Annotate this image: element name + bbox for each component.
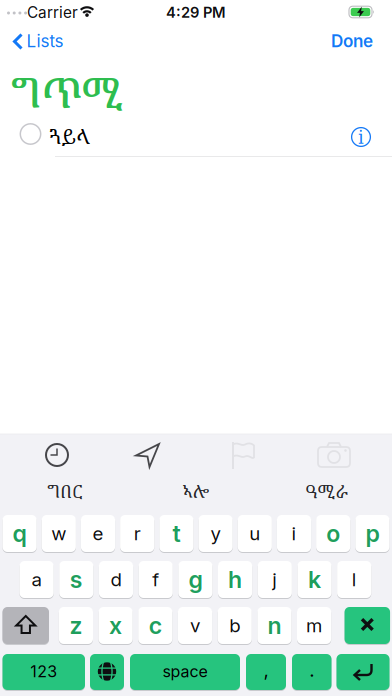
staticText: v — [190, 614, 200, 637]
button[interactable]: o — [316, 514, 350, 553]
staticText: space — [162, 662, 207, 681]
staticText: Lists — [26, 31, 63, 51]
staticText: ዓሚራ — [306, 479, 348, 503]
staticText: ግጥሚ — [11, 64, 123, 120]
button[interactable] — [312, 436, 356, 474]
staticText: g — [188, 565, 202, 594]
button[interactable] — [126, 436, 170, 474]
staticText: o — [326, 519, 340, 548]
staticText: e — [92, 522, 103, 545]
staticText: Done — [331, 31, 373, 51]
staticText: l — [352, 568, 357, 591]
staticText: t — [172, 519, 180, 548]
staticText: a — [32, 568, 42, 591]
button[interactable]: ኣሎ — [134, 476, 258, 506]
button[interactable]: Lists — [0, 23, 76, 59]
button[interactable]: y — [198, 514, 233, 553]
staticText: 4:29 PM — [166, 4, 226, 21]
staticText: p — [365, 519, 379, 548]
button[interactable]: ግበር — [3, 476, 127, 506]
staticText: i — [291, 522, 296, 545]
button[interactable]: ዓሚራ — [265, 476, 389, 506]
staticText: i — [358, 127, 364, 148]
button[interactable]: Done — [320, 23, 384, 59]
button[interactable]: h — [218, 560, 252, 599]
button[interactable]: l — [337, 560, 371, 599]
button[interactable]: k — [297, 560, 332, 599]
staticText: r — [134, 522, 141, 545]
button[interactable]: f — [139, 560, 173, 599]
staticText: q — [13, 519, 27, 548]
staticText: x — [109, 611, 122, 640]
button[interactable] — [2, 606, 49, 645]
staticText: n — [267, 611, 281, 640]
staticText: b — [229, 614, 240, 637]
staticText: f — [152, 568, 159, 591]
staticText: 123 — [30, 662, 57, 681]
staticText: c — [149, 611, 162, 640]
staticText: m — [306, 614, 322, 637]
button[interactable]: . — [292, 653, 331, 691]
button[interactable]: d — [99, 560, 133, 599]
button[interactable]: r — [120, 514, 154, 553]
button[interactable]: p — [355, 514, 389, 553]
button[interactable]: 123 — [2, 653, 85, 691]
staticText: Carrier — [27, 3, 78, 22]
button[interactable]: e — [81, 514, 115, 553]
staticText: w — [51, 522, 66, 545]
button[interactable]: i — [346, 122, 376, 152]
button[interactable] — [0, 113, 392, 155]
staticText: ግበር — [47, 479, 83, 503]
button[interactable]: g — [178, 560, 212, 599]
button[interactable]: s — [59, 560, 93, 599]
button[interactable]: m — [297, 606, 331, 645]
button[interactable] — [35, 436, 79, 474]
button[interactable]: u — [238, 514, 272, 553]
button[interactable] — [90, 653, 124, 691]
button[interactable]: c — [138, 606, 172, 645]
button[interactable]: x — [98, 606, 133, 645]
staticText: d — [110, 568, 121, 591]
staticText: k — [308, 565, 321, 594]
staticText: . — [309, 659, 314, 681]
button[interactable]: space — [130, 653, 240, 691]
staticText: , — [263, 659, 268, 681]
button[interactable]: b — [218, 606, 252, 645]
staticText: u — [249, 522, 260, 545]
staticText: z — [69, 611, 82, 640]
button[interactable]: n — [257, 606, 291, 645]
button[interactable]: z — [59, 606, 93, 645]
button[interactable]: t — [159, 514, 193, 553]
staticText: y — [211, 522, 221, 545]
button[interactable] — [336, 653, 389, 691]
button[interactable]: v — [178, 606, 212, 645]
staticText: s — [70, 565, 83, 594]
button[interactable]: w — [42, 514, 76, 553]
button[interactable]: j — [258, 560, 292, 599]
staticText: j — [272, 568, 277, 591]
button[interactable] — [345, 606, 390, 645]
button[interactable]: , — [246, 653, 286, 691]
button[interactable]: i — [277, 514, 311, 553]
staticText: h — [228, 565, 242, 594]
staticText: ጓይላ — [49, 122, 90, 150]
button[interactable]: a — [19, 560, 54, 599]
button[interactable] — [221, 436, 265, 474]
staticText: ኣሎ — [182, 479, 209, 503]
button[interactable]: q — [2, 514, 37, 553]
